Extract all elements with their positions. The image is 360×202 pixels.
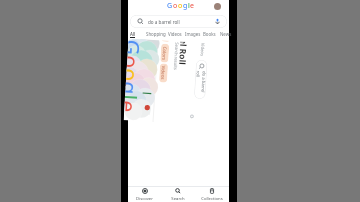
staticText: Images	[185, 31, 201, 37]
staticText: do a barrel roll	[194, 71, 207, 99]
button[interactable]: do a barrel roll	[194, 60, 207, 99]
staticText: Videos	[168, 31, 182, 37]
button[interactable]: do a barrel roll	[130, 15, 227, 28]
button[interactable]: Discover	[128, 188, 161, 202]
button[interactable]: Collections	[195, 188, 229, 202]
staticText: Search	[171, 196, 185, 202]
staticText: l	[188, 1, 190, 11]
staticText: G	[167, 1, 173, 11]
staticText: All	[130, 31, 136, 37]
staticText: News	[220, 31, 232, 37]
button[interactable]	[161, 40, 169, 42]
staticText: Shopping	[146, 31, 166, 37]
staticText: do a barrel roll	[148, 19, 180, 25]
button[interactable]: Shopping	[146, 31, 166, 37]
staticText: Colors	[161, 46, 168, 61]
button[interactable]: Videos	[198, 43, 205, 62]
staticText: g	[183, 1, 188, 11]
button[interactable]: News	[220, 31, 232, 37]
button[interactable]: G	[126, 40, 154, 115]
button[interactable]: Images	[197, 62, 204, 82]
staticText: e	[190, 1, 194, 11]
staticText: Discover	[136, 196, 153, 202]
staticText: Images	[197, 62, 204, 77]
staticText: Videos	[199, 43, 205, 57]
staticText: Collections	[201, 196, 223, 202]
button[interactable]: Videos	[159, 63, 168, 83]
staticText: G	[127, 39, 146, 56]
button[interactable]: Images	[185, 31, 201, 37]
staticText: o	[127, 55, 146, 69]
button[interactable]: Account	[214, 3, 221, 10]
staticText: g	[125, 81, 144, 95]
staticText: Videos	[160, 65, 167, 81]
staticText: Search results	[172, 42, 179, 70]
button[interactable]: Videos	[168, 31, 182, 37]
staticText: o	[178, 1, 183, 11]
staticText: Books	[203, 31, 216, 37]
button[interactable]: All	[130, 31, 136, 37]
staticText: o	[173, 1, 178, 11]
staticText: Barrel Roll	[176, 41, 189, 65]
staticText: e	[124, 100, 143, 113]
button[interactable]: Books	[203, 31, 216, 37]
button[interactable]: Search	[161, 188, 195, 202]
staticText: o	[126, 68, 145, 82]
button[interactable]: Colors	[160, 43, 169, 63]
staticText: l	[125, 94, 143, 101]
